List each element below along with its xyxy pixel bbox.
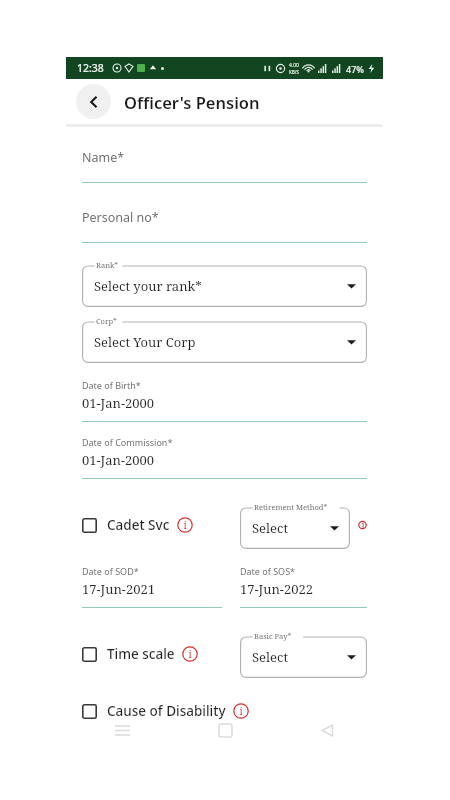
button[interactable]: Personal no*	[82, 209, 367, 243]
button[interactable]: Info	[358, 517, 367, 533]
staticText: Personal no*	[82, 209, 159, 226]
button[interactable]: Date of SOS*	[240, 565, 367, 608]
button[interactable]: Info	[182, 646, 198, 662]
staticText: Select your rank*	[94, 277, 202, 295]
button[interactable]: Recents	[106, 714, 138, 746]
staticText: 17-Jun-2021	[82, 580, 155, 598]
staticText: Retirement Method*	[254, 502, 328, 512]
staticText: Officer's Pension	[124, 91, 260, 113]
button[interactable]: Basic Pay*	[240, 630, 367, 678]
button[interactable]: Retirement Method*	[240, 501, 350, 549]
staticText: 01-Jan-2000	[82, 451, 155, 469]
staticText: 47%	[346, 63, 364, 75]
button[interactable]: Back	[76, 84, 111, 119]
staticText: Basic Pay*	[254, 631, 292, 641]
staticText: i	[361, 518, 365, 532]
staticText: Date of Commission*	[82, 436, 173, 448]
staticText: i	[239, 704, 243, 718]
staticText: Select	[252, 648, 288, 666]
staticText: Cause of Disability	[107, 702, 226, 720]
button[interactable]: Info	[177, 517, 193, 533]
staticText: i	[183, 518, 187, 532]
staticText: Cadet Svc	[107, 516, 170, 534]
button[interactable]: Info	[233, 703, 249, 719]
staticText: 12:38	[77, 61, 104, 75]
staticText: Date of SOD*	[82, 565, 139, 577]
button[interactable]: Date of SOD*	[82, 565, 222, 608]
staticText: 17-Jun-2022	[240, 580, 313, 598]
staticText: KB/S	[289, 69, 299, 75]
button[interactable]: Home	[209, 714, 241, 746]
button[interactable]: Name*	[82, 149, 367, 183]
button[interactable]: Date of Commission*	[82, 436, 367, 479]
staticText: Time scale	[107, 645, 175, 663]
staticText: Corp*	[96, 316, 117, 326]
button[interactable]: Date of Birth*	[82, 379, 367, 422]
staticText: Rank*	[96, 260, 119, 270]
button[interactable]: Cause of Disability	[82, 702, 249, 720]
button[interactable]: Cadet Svc	[82, 516, 193, 534]
staticText: Date of Birth*	[82, 379, 141, 391]
staticText: i	[188, 647, 192, 661]
staticText: Name*	[82, 149, 125, 166]
staticText: Select Your Corp	[94, 333, 196, 351]
button[interactable]: Back	[311, 714, 343, 746]
button[interactable]: Rank*	[82, 259, 367, 307]
button[interactable]: Time scale	[82, 645, 198, 663]
staticText: Select	[252, 519, 288, 537]
button[interactable]: Corp*	[82, 315, 367, 363]
staticText: 01-Jan-2000	[82, 394, 155, 412]
staticText: 4.00	[289, 62, 299, 69]
staticText: Date of SOS*	[240, 565, 296, 577]
